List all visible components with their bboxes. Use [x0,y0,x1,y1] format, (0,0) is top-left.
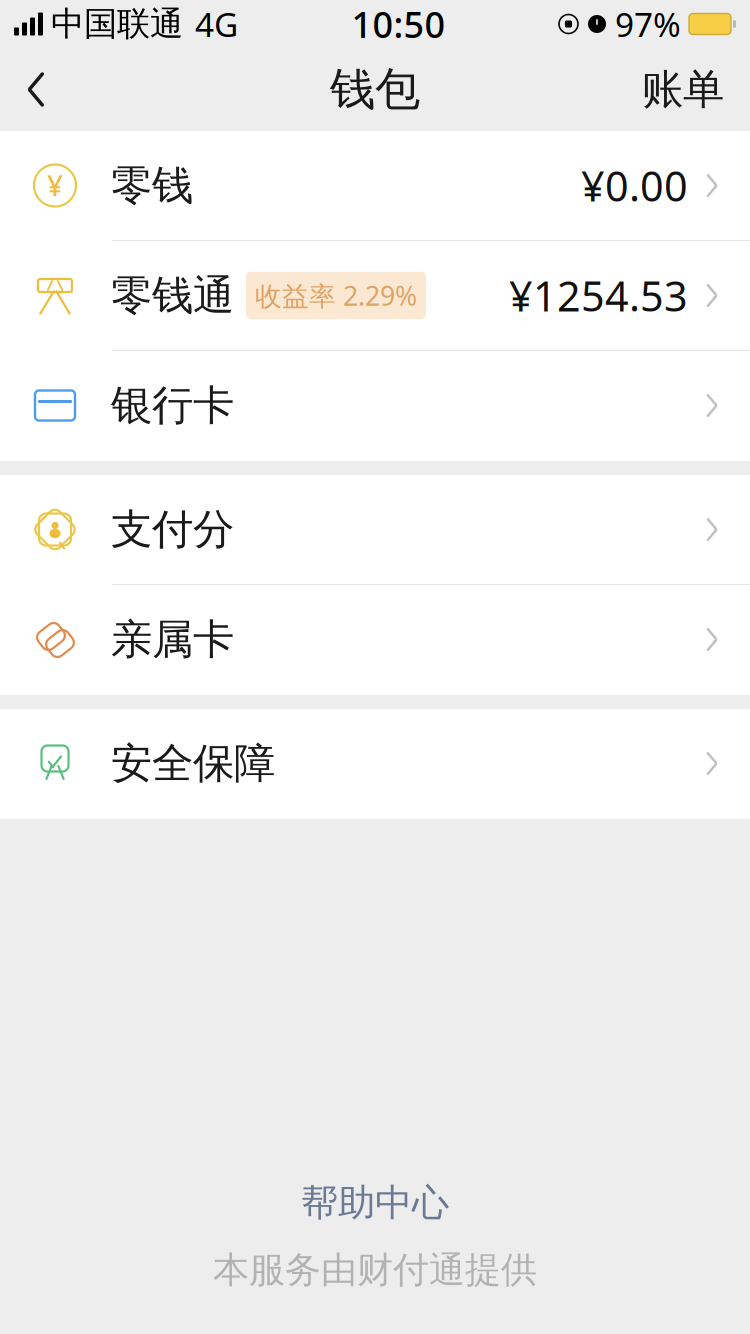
staticText: 10:50 [351,0,445,48]
staticText: 支付分 [111,504,234,555]
staticText: 4G [195,2,238,46]
staticText: 中国联通 [51,3,183,44]
staticText: 钱包 [330,62,420,117]
staticText: 银行卡 [111,380,234,431]
button[interactable]: 支付分 [0,475,750,585]
button[interactable]: 返回 [0,48,72,131]
staticText: ¥0.00 [581,158,688,213]
staticText: 账单 [642,64,724,115]
staticText: 零钱 [111,160,193,211]
button[interactable]: 零钱通 [0,241,750,351]
button[interactable]: 亲属卡 [0,585,750,695]
button[interactable]: 帮助中心 [271,1172,479,1234]
staticText: 本服务由财付通提供 [213,1248,537,1292]
button[interactable]: 银行卡 [0,351,750,461]
staticText: 97% [615,2,681,46]
button[interactable]: 账单 [616,48,750,131]
staticText: 零钱通 [111,270,234,321]
staticText: 亲属卡 [111,614,234,665]
staticText: 帮助中心 [301,1180,449,1226]
button[interactable]: ¥ [0,131,750,241]
staticText: 收益率 2.29% [255,278,417,313]
staticText: ¥ [47,167,63,204]
staticText: ¥1254.53 [509,268,688,323]
staticText: 安全保障 [111,738,275,789]
button[interactable]: 安全保障 [0,709,750,819]
